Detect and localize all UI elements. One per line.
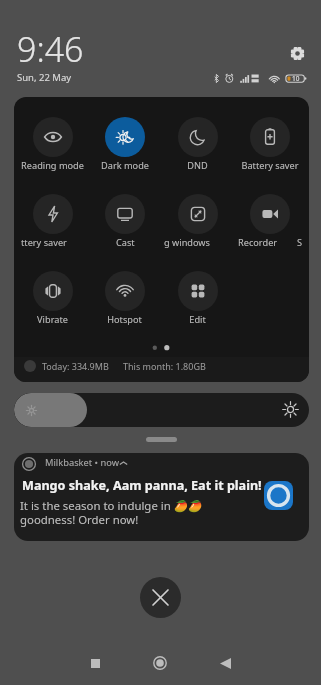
staticText: Sun, 22 May [17,71,72,84]
button[interactable] [88,189,161,245]
button[interactable] [16,266,89,322]
button[interactable] [88,112,161,168]
button[interactable]: Home [140,643,180,683]
button[interactable] [88,266,161,322]
staticText: Mango shake, Aam panna, Eat it plain! [22,477,262,494]
staticText: Cast [116,236,135,249]
staticText: Reading mode [21,159,84,172]
button[interactable] [16,112,89,168]
staticText: Today: 334.9MB [42,360,109,372]
staticText: DND [187,159,208,172]
staticText: g windows [164,236,210,249]
staticText: It is the season to indulge in 🥭🥭 goodne… [20,498,203,528]
staticText: Battery saver [241,159,299,172]
staticText: Milkbasket • now [45,456,119,469]
button[interactable] [16,189,89,245]
button[interactable]: Clear all notifications [140,577,181,618]
button[interactable]: Back [205,643,245,683]
button[interactable] [161,112,234,168]
staticText: Edit [189,313,206,326]
button[interactable] [233,112,306,168]
staticText: 9:46 [17,26,84,72]
staticText: Dark mode [101,159,149,172]
button[interactable]: Settings [285,41,309,65]
button[interactable] [161,266,234,322]
staticText: ttery saver [21,236,67,249]
staticText: Recorder [238,236,278,249]
button[interactable]: Milkbasket • now [14,453,309,541]
staticText: Vibrate [37,313,68,326]
button[interactable]: Brightness [14,393,309,427]
button[interactable] [233,189,306,245]
button[interactable]: Recent apps [75,643,115,683]
staticText: This month: 1.80GB [123,360,206,372]
button[interactable] [161,189,234,245]
staticText: 10 [292,74,300,83]
staticText: Hotspot [107,313,142,326]
staticText: S [297,236,303,249]
